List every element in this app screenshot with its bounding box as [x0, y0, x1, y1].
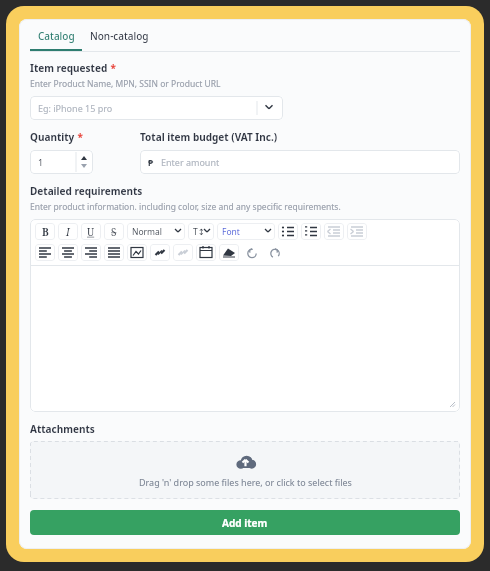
- staticText: U: [87, 225, 95, 239]
- staticText: Eg: iPhone 15 pro: [38, 102, 113, 114]
- staticText: Normal: [132, 226, 163, 238]
- staticText: S: [111, 225, 117, 239]
- staticText: Quantity: [30, 130, 75, 144]
- staticText: Attachments: [30, 422, 95, 436]
- staticText: *: [75, 130, 84, 144]
- button[interactable]: Align right: [81, 244, 101, 261]
- button[interactable]: Eg: iPhone 15 pro: [30, 96, 283, 120]
- button[interactable]: Undo: [242, 244, 262, 261]
- staticText: *: [108, 61, 117, 75]
- button[interactable]: Decrease indent: [324, 223, 344, 240]
- staticText: Enter Product Name, MPN, SSIN or Product…: [30, 78, 221, 90]
- staticText: Total item budget (VAT Inc.): [140, 130, 278, 144]
- button[interactable]: 1: [30, 150, 93, 174]
- button[interactable]: Non-catalog: [90, 29, 149, 43]
- button[interactable]: Font: [217, 223, 275, 240]
- staticText: B: [42, 225, 49, 239]
- staticText: T↕: [193, 226, 205, 238]
- button[interactable]: Numbered list: [301, 223, 321, 240]
- button[interactable]: ₱: [140, 150, 460, 174]
- button[interactable]: Catalog: [38, 29, 75, 49]
- button[interactable]: Insert image: [127, 244, 147, 261]
- staticText: 1: [38, 156, 44, 168]
- button[interactable]: Align left: [35, 244, 55, 261]
- staticText: Item requested: [30, 61, 108, 75]
- button[interactable]: Drag 'n' drop some files here, or click …: [30, 441, 460, 499]
- staticText: Catalog: [38, 29, 75, 43]
- button[interactable]: [30, 266, 460, 412]
- button[interactable]: Justify: [104, 244, 124, 261]
- button[interactable]: Add item: [30, 510, 460, 535]
- staticText: I: [66, 225, 70, 239]
- button[interactable]: I: [58, 223, 78, 240]
- button[interactable]: Clear formatting: [219, 244, 239, 261]
- button[interactable]: T↕: [188, 223, 214, 240]
- button[interactable]: Increase indent: [347, 223, 367, 240]
- staticText: Enter amount: [161, 156, 220, 168]
- button[interactable]: B: [35, 223, 55, 240]
- button[interactable]: Remove link: [173, 244, 193, 261]
- staticText: Non-catalog: [90, 29, 149, 43]
- staticText: Font: [222, 226, 240, 238]
- staticText: ₱: [148, 156, 154, 168]
- button[interactable]: U: [81, 223, 101, 240]
- staticText: Detailed requirements: [30, 184, 143, 198]
- staticText: Enter product information. including col…: [30, 201, 341, 213]
- button[interactable]: Redo: [265, 244, 285, 261]
- button[interactable]: Insert table: [196, 244, 216, 261]
- button[interactable]: S: [104, 223, 124, 240]
- button[interactable]: Normal: [127, 223, 185, 240]
- staticText: Drag 'n' drop some files here, or click …: [139, 476, 352, 488]
- button[interactable]: Bulleted list: [278, 223, 298, 240]
- button[interactable]: Insert link: [150, 244, 170, 261]
- staticText: Add item: [222, 516, 268, 530]
- button[interactable]: Align center: [58, 244, 78, 261]
